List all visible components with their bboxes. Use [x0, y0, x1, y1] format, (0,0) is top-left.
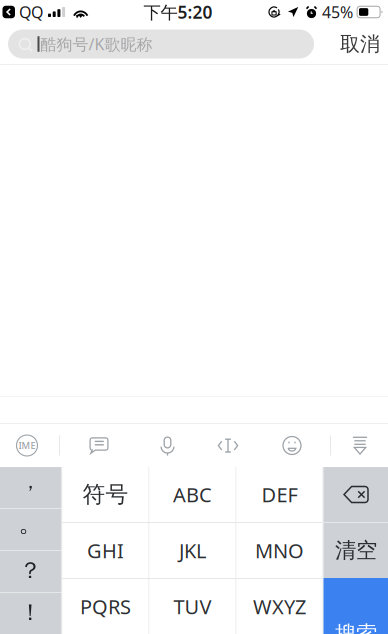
- button[interactable]: ？: [0, 551, 61, 592]
- button[interactable]: 搜索: [323, 578, 388, 634]
- staticText: ？: [19, 557, 42, 584]
- staticText: 符号: [82, 481, 128, 508]
- staticText: WXYZ: [253, 593, 306, 620]
- button[interactable]: DEF: [236, 467, 322, 522]
- button[interactable]: TUV: [149, 579, 235, 634]
- button[interactable]: WXYZ: [236, 579, 322, 634]
- button[interactable]: Hide keyboard: [331, 424, 388, 467]
- staticText: 搜索: [335, 621, 377, 634]
- button[interactable]: Emoji: [259, 424, 325, 467]
- staticText: TUV: [173, 593, 211, 620]
- staticText: JKL: [179, 537, 206, 564]
- button[interactable]: ！: [0, 593, 61, 634]
- button[interactable]: JKL: [149, 523, 235, 578]
- button[interactable]: GHI: [62, 523, 148, 578]
- staticText: ，: [20, 469, 40, 494]
- button[interactable]: Messages: [60, 424, 138, 467]
- button[interactable]: Input method: [0, 424, 55, 467]
- staticText: 酷狗号/K歌昵称: [40, 33, 152, 55]
- button[interactable]: 取消: [332, 24, 388, 64]
- staticText: ABC: [173, 481, 212, 508]
- button[interactable]: 。: [0, 509, 61, 550]
- button[interactable]: ABC: [149, 467, 235, 522]
- staticText: QQ: [19, 1, 43, 23]
- button[interactable]: 清空: [323, 523, 388, 578]
- button[interactable]: Voice input: [138, 424, 197, 467]
- staticText: DEF: [261, 481, 297, 508]
- button[interactable]: Move cursor: [197, 424, 259, 467]
- button[interactable]: MNO: [236, 523, 322, 578]
- staticText: MNO: [255, 537, 304, 564]
- staticText: PQRS: [80, 593, 131, 620]
- staticText: 下午5:20: [144, 0, 213, 23]
- button[interactable]: ，: [0, 467, 61, 508]
- staticText: IME: [18, 439, 35, 452]
- button[interactable]: 符号: [62, 467, 148, 522]
- staticText: 45%: [322, 1, 353, 23]
- staticText: 清空: [335, 537, 377, 564]
- staticText: 取消: [340, 32, 380, 56]
- staticText: 。: [18, 509, 42, 538]
- staticText: GHI: [87, 537, 124, 564]
- button[interactable]: Delete: [323, 467, 388, 522]
- staticText: ！: [19, 599, 42, 626]
- button[interactable]: PQRS: [62, 579, 148, 634]
